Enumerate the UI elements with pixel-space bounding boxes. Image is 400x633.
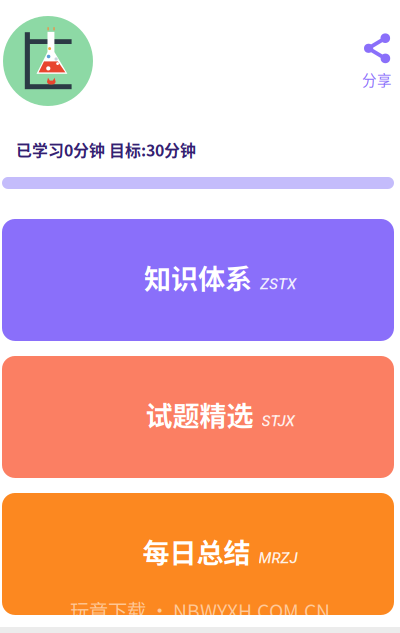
- staticText: 玩竟下载 · NBWYXH.COM.CN: [70, 596, 330, 624]
- staticText: ZSTX: [260, 275, 296, 293]
- staticText: STJX: [261, 412, 294, 430]
- staticText: 知识体系: [144, 258, 252, 297]
- button[interactable]: 试题精选: [2, 356, 394, 478]
- button[interactable]: 每日总结: [2, 493, 394, 615]
- staticText: 试题精选: [145, 395, 253, 434]
- staticText: MRZJ: [258, 549, 297, 567]
- staticText: 已学习0分钟 目标:30分钟: [16, 138, 196, 161]
- staticText: 分享: [362, 69, 392, 90]
- button[interactable]: 分享: [346, 16, 391, 90]
- staticText: 每日总结: [142, 532, 250, 571]
- button[interactable]: 知识体系: [2, 219, 394, 341]
